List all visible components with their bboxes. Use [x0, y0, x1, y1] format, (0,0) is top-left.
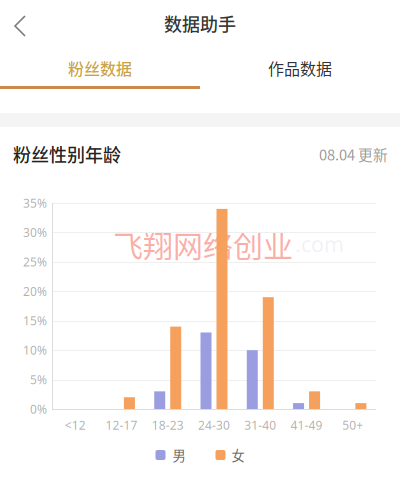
button[interactable]: Back	[0, 0, 48, 47]
staticText: <12	[65, 417, 86, 433]
staticText: 50+	[342, 417, 363, 433]
staticText: 31-40	[244, 417, 276, 433]
staticText: 粉丝性别年龄	[13, 141, 121, 167]
staticText: 作品数据	[268, 56, 332, 80]
staticText: 30%	[23, 224, 47, 240]
staticText: 0%	[30, 401, 47, 417]
staticText: 24-30	[198, 417, 230, 433]
button[interactable]: 作品数据	[200, 47, 400, 89]
staticText: 男	[172, 445, 185, 465]
staticText: 41-49	[291, 417, 323, 433]
staticText: 女	[231, 445, 244, 465]
staticText: 18-23	[152, 417, 184, 433]
button[interactable]: 粉丝数据	[0, 47, 200, 89]
staticText: .com	[295, 230, 344, 258]
staticText: 粉丝数据	[68, 56, 132, 80]
staticText: 08.04 更新	[319, 143, 388, 165]
staticText: 35%	[23, 195, 47, 211]
staticText: 数据助手	[164, 10, 236, 37]
staticText: 25%	[23, 254, 47, 270]
staticText: 15%	[23, 313, 47, 329]
staticText: 20%	[23, 283, 47, 299]
staticText: 10%	[23, 342, 47, 358]
staticText: 飞翔网络创业	[113, 222, 293, 266]
staticText: 12-17	[105, 417, 137, 433]
staticText: 5%	[30, 372, 47, 387]
